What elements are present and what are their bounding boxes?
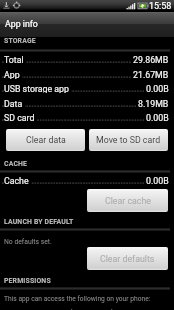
staticText: CACHE: [4, 160, 28, 168]
staticText: Move to SD card: [96, 135, 161, 145]
staticText: Total: [4, 55, 24, 64]
staticText: 21.67MB: [133, 70, 169, 79]
button[interactable]: Clear cache: [87, 189, 168, 212]
staticText: This app can access the following on you…: [4, 295, 151, 303]
staticText: 0.00B: [146, 113, 169, 122]
staticText: PERMISSIONS: [4, 277, 51, 285]
staticText: App info: [5, 19, 38, 29]
staticText: Data: [4, 99, 23, 108]
staticText: Clear data: [26, 135, 66, 145]
staticText: Hardware controls: [57, 308, 117, 310]
staticText: LAUNCH BY DEFAULT: [4, 218, 74, 226]
staticText: Cache: [4, 176, 29, 185]
staticText: App: [4, 70, 20, 79]
button[interactable]: Hardware controls: [0, 308, 174, 310]
staticText: No defaults set.: [4, 238, 52, 246]
staticText: 0.00B: [146, 176, 169, 185]
staticText: USB storage app: [4, 84, 69, 93]
staticText: 0.00B: [146, 84, 169, 93]
staticText: 29.86MB: [133, 55, 169, 64]
button[interactable]: Clear defaults: [87, 247, 168, 270]
button[interactable]: Move to SD card: [89, 129, 168, 151]
staticText: Clear cache: [105, 196, 151, 206]
staticText: 15:58: [149, 1, 172, 12]
staticText: 8.19MB: [138, 99, 169, 108]
staticText: STORAGE: [4, 37, 36, 45]
button[interactable]: Clear data: [6, 129, 85, 151]
staticText: Clear defaults: [100, 254, 155, 264]
staticText: SD card: [4, 113, 35, 122]
